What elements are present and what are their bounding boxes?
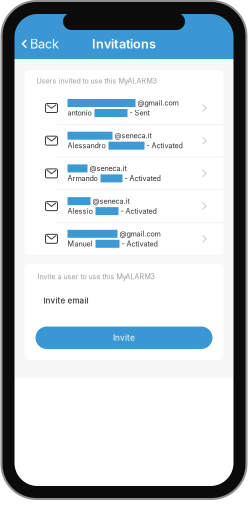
button[interactable]: @gmail.com	[24, 92, 223, 124]
staticText: Alessandro	[67, 141, 105, 150]
staticText: Back	[30, 36, 59, 52]
staticText: Invite email	[43, 296, 88, 305]
button[interactable]: @seneca.it	[24, 125, 223, 157]
button[interactable]: @seneca.it	[24, 157, 223, 189]
button[interactable]: Back	[14, 33, 59, 55]
staticText: - Activated	[121, 239, 157, 248]
button[interactable]: Invite	[35, 326, 212, 349]
button[interactable]: @gmail.com	[24, 223, 223, 255]
staticText: @seneca.it	[114, 131, 151, 140]
staticText: Users invited to use this MyALARM3	[36, 77, 156, 85]
staticText: - Activated	[120, 207, 156, 215]
staticText: Invite a user to use this MyALARM3	[37, 272, 154, 281]
staticText: @gmail.com	[119, 229, 160, 238]
staticText: Invite	[113, 333, 135, 343]
staticText: @gmail.com	[137, 99, 178, 107]
staticText: - Activated	[146, 141, 182, 150]
staticText: - Sent	[129, 109, 149, 117]
button[interactable]: @seneca.it	[24, 190, 223, 222]
staticText: @seneca.it	[89, 164, 126, 173]
staticText: Manuel	[67, 239, 92, 248]
staticText: Armando	[67, 174, 97, 183]
staticText: @seneca.it	[92, 197, 129, 205]
staticText: antonio	[67, 109, 91, 117]
staticText: Invitations	[92, 36, 156, 52]
staticText: Alessio	[67, 207, 92, 215]
staticText: - Activated	[124, 174, 160, 183]
